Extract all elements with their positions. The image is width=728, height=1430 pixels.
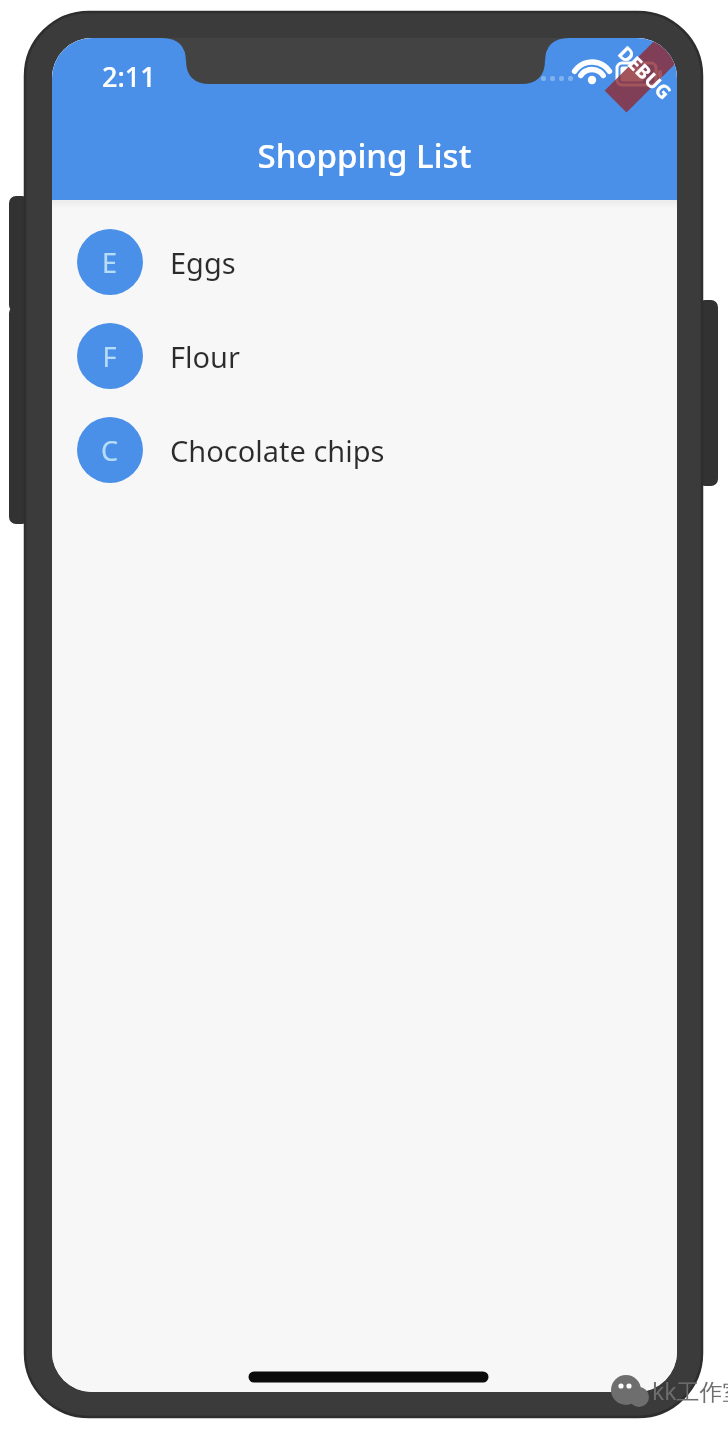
button[interactable]: Flour (52, 309, 677, 403)
button[interactable]: Chocolate chips (52, 403, 677, 497)
button[interactable]: Eggs (52, 215, 677, 309)
